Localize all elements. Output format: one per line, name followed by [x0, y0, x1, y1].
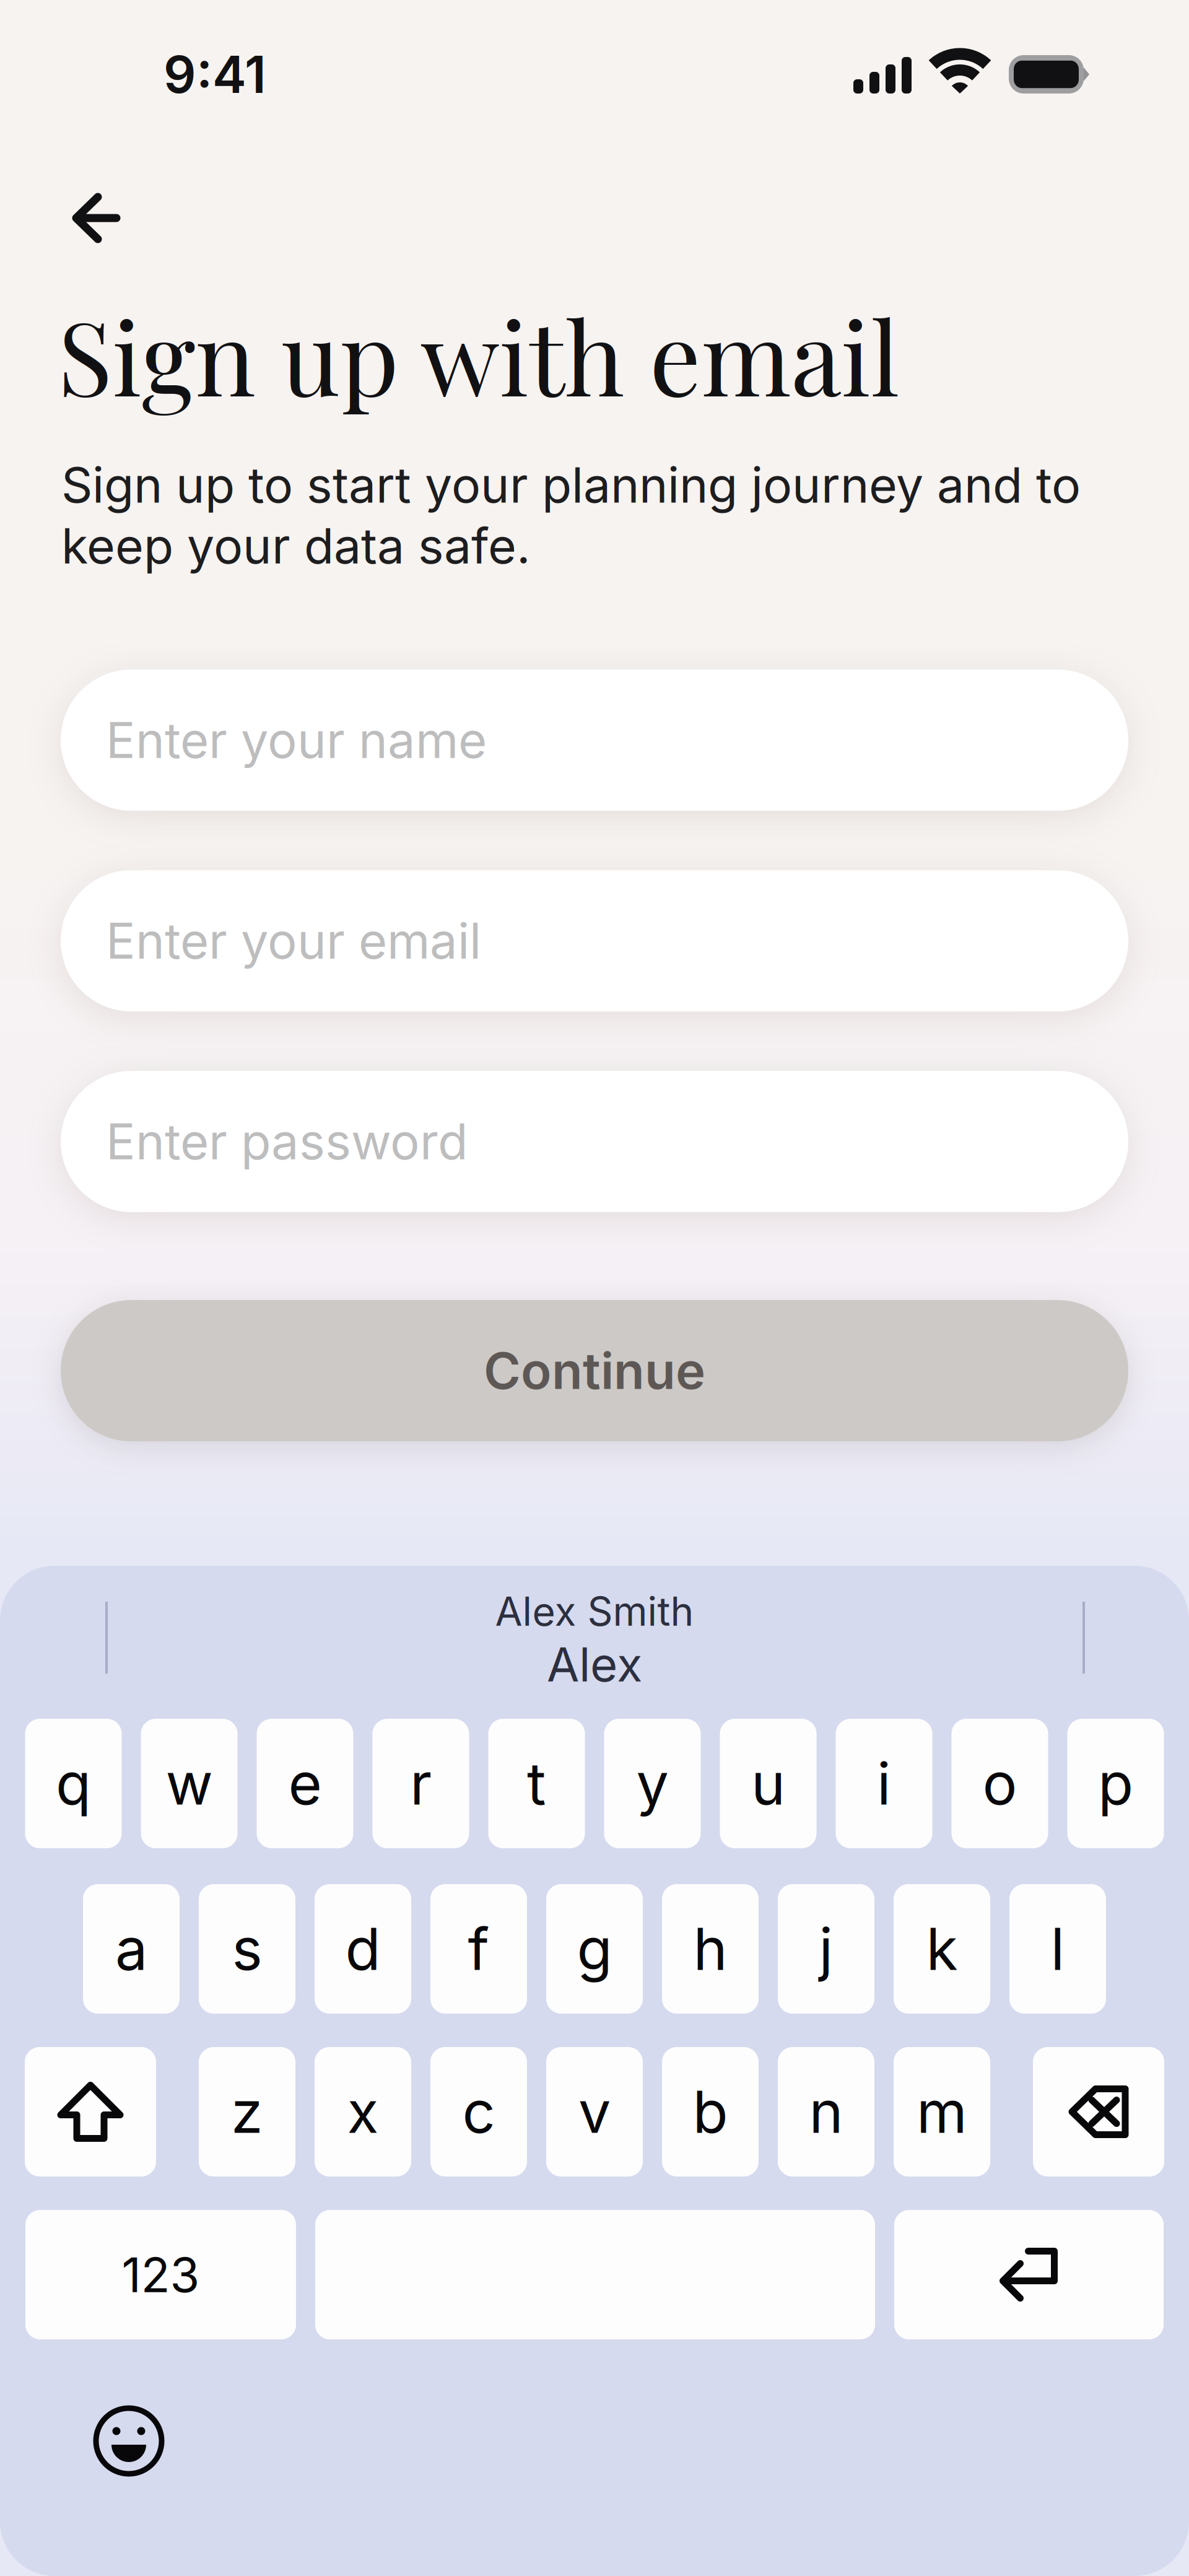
staticText: h	[693, 1914, 727, 1984]
staticText: 123	[122, 2246, 200, 2304]
button[interactable]: t	[488, 1719, 585, 1848]
staticText: o	[982, 1749, 1017, 1818]
button[interactable]: Alex Smith	[111, 1587, 1078, 1693]
button[interactable]: y	[604, 1719, 701, 1848]
staticText: c	[462, 2077, 495, 2147]
staticText: y	[636, 1749, 669, 1818]
staticText: Sign up to start your planning journey a…	[61, 455, 1081, 575]
staticText: a	[115, 1914, 147, 1984]
button[interactable]: s	[199, 1884, 295, 2014]
button[interactable]: z	[199, 2047, 295, 2177]
staticText: Sign up with email	[58, 287, 900, 422]
staticText: Enter password	[106, 1112, 468, 1171]
button[interactable]: d	[315, 1884, 411, 2014]
staticText: v	[578, 2077, 611, 2147]
staticText: i	[877, 1749, 891, 1818]
button[interactable]: o	[952, 1719, 1048, 1848]
button[interactable]: Enter your email	[61, 870, 1128, 1011]
button[interactable]: m	[894, 2047, 990, 2177]
button[interactable]: Back	[48, 172, 147, 264]
button[interactable]: q	[25, 1719, 122, 1848]
staticText: l	[1051, 1914, 1065, 1984]
button[interactable]: 123	[25, 2210, 296, 2339]
staticText: e	[288, 1749, 322, 1818]
staticText: g	[577, 1914, 612, 1984]
button[interactable]: Enter your name	[61, 670, 1128, 811]
button[interactable]: v	[546, 2047, 643, 2177]
staticText: u	[751, 1749, 785, 1818]
button[interactable]: c	[430, 2047, 527, 2177]
staticText: k	[926, 1914, 958, 1984]
button[interactable]: h	[662, 1884, 759, 2014]
staticText: s	[232, 1914, 262, 1984]
staticText: j	[819, 1914, 833, 1984]
button[interactable]: p	[1067, 1719, 1164, 1848]
button[interactable]: Emoji	[93, 2405, 165, 2477]
button[interactable]: n	[778, 2047, 874, 2177]
staticText: Enter your email	[106, 911, 481, 971]
button[interactable]: Delete	[1033, 2047, 1164, 2177]
staticText: t	[527, 1749, 546, 1818]
button[interactable]: e	[257, 1719, 353, 1848]
button[interactable]: j	[778, 1884, 874, 2014]
button[interactable]: a	[83, 1884, 180, 2014]
button[interactable]: f	[430, 1884, 527, 2014]
staticText: f	[468, 1914, 490, 1984]
button[interactable]: l	[1009, 1884, 1106, 2014]
staticText: d	[345, 1914, 381, 1984]
button[interactable]: u	[720, 1719, 817, 1848]
staticText: 9:41	[163, 44, 266, 105]
staticText: Alex	[547, 1636, 642, 1693]
button[interactable]: k	[894, 1884, 990, 2014]
staticText: q	[56, 1749, 91, 1818]
button[interactable]: Shift	[25, 2047, 156, 2177]
button[interactable]: Enter password	[61, 1071, 1128, 1212]
staticText: n	[809, 2077, 843, 2147]
staticText: b	[693, 2077, 728, 2147]
staticText: r	[410, 1749, 432, 1818]
staticText: z	[231, 2077, 263, 2147]
staticText: w	[166, 1749, 213, 1818]
staticText: m	[917, 2077, 967, 2147]
button[interactable]: Return	[894, 2210, 1164, 2339]
button[interactable]: r	[372, 1719, 469, 1848]
staticText: Continue	[484, 1340, 705, 1401]
staticText: Alex Smith	[495, 1587, 694, 1635]
button[interactable]: b	[662, 2047, 759, 2177]
button[interactable]: i	[836, 1719, 932, 1848]
button[interactable]: w	[141, 1719, 237, 1848]
staticText: Enter your name	[106, 710, 487, 770]
button[interactable]: Continue	[61, 1300, 1128, 1441]
staticText: p	[1098, 1749, 1133, 1818]
staticText: x	[347, 2077, 379, 2147]
button[interactable]: x	[315, 2047, 411, 2177]
button[interactable]: g	[546, 1884, 643, 2014]
